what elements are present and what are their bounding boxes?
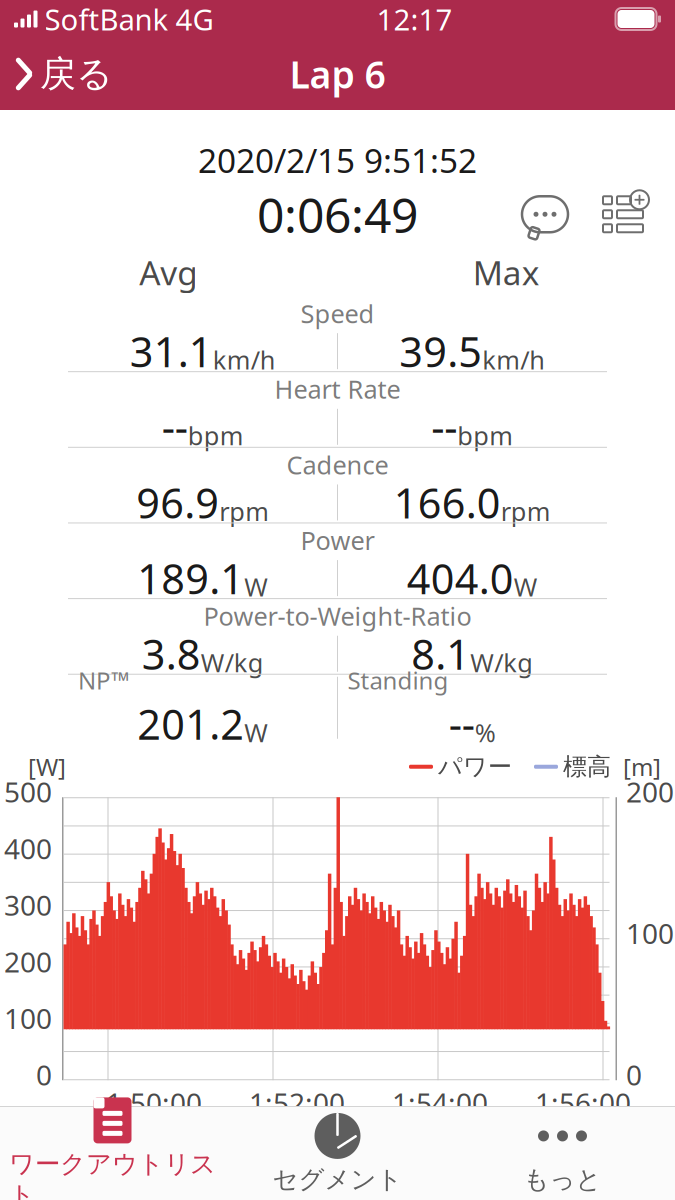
staticText: km/h (213, 343, 276, 377)
staticText: 100 (626, 915, 674, 952)
staticText: 189.1 (137, 551, 244, 606)
button[interactable]: Add to list (595, 190, 651, 238)
staticText: 166.0 (394, 475, 501, 530)
staticText: 8.1 (411, 626, 470, 681)
staticText: rpm (501, 494, 551, 528)
staticText: % (475, 715, 496, 749)
button[interactable]: Comments (519, 190, 571, 238)
staticText: 0 (36, 1056, 52, 1093)
staticText: 0 (626, 1056, 642, 1093)
staticText: rpm (219, 494, 269, 528)
staticText: Heart Rate (274, 372, 400, 406)
staticText: km/h (482, 343, 545, 377)
staticText: SoftBank (44, 0, 168, 38)
staticText: 96.9 (136, 475, 219, 530)
staticText: 12:17 (376, 0, 452, 38)
staticText: W/kg (201, 645, 264, 679)
staticText: bpm (188, 419, 244, 452)
staticText: 4G (175, 0, 213, 38)
staticText: Avg (139, 250, 198, 295)
staticText: Power (300, 523, 374, 557)
staticText: Speed (300, 296, 374, 330)
staticText: 100 (4, 999, 52, 1037)
button[interactable]: もっと (450, 1106, 675, 1200)
staticText: -- (162, 399, 188, 454)
button[interactable]: ワークアウトリスト (0, 1090, 225, 1200)
staticText: 39.5 (399, 324, 482, 379)
staticText: 1:54:00 (392, 1084, 488, 1121)
staticText: 31.1 (130, 324, 213, 379)
staticText: もっと (523, 1164, 601, 1195)
staticText: W/kg (470, 645, 533, 679)
staticText: [W] (28, 751, 66, 783)
staticText: -- (449, 696, 475, 751)
staticText: Lap 6 (289, 49, 385, 99)
staticText: 1:56:00 (535, 1084, 631, 1121)
staticText: 404.0 (407, 551, 514, 606)
staticText: 0:06:49 (257, 182, 418, 246)
staticText: Power-to-Weight-Ratio (203, 599, 471, 633)
staticText: 300 (4, 886, 52, 923)
button[interactable]: セグメント (225, 1106, 450, 1200)
staticText: [m] (623, 751, 661, 783)
staticText: ワークアウトリスト (9, 1148, 216, 1200)
button[interactable]: 戻る (0, 44, 113, 104)
staticText: 1:50:00 (106, 1084, 202, 1121)
staticText: 200 (4, 943, 52, 980)
staticText: W (514, 570, 538, 603)
staticText: NP™ (78, 664, 130, 696)
staticText: 3.8 (142, 626, 201, 681)
staticText: 標高 (563, 752, 611, 781)
staticText: セグメント (272, 1164, 402, 1195)
staticText: W (244, 715, 268, 749)
staticText: 1:52:00 (249, 1084, 345, 1121)
staticText: 200 (626, 773, 674, 810)
staticText: -- (431, 399, 457, 454)
staticText: 戻る (40, 52, 113, 96)
staticText: 500 (4, 773, 52, 810)
staticText: Cadence (286, 448, 388, 481)
staticText: W (244, 570, 268, 603)
staticText: Max (473, 250, 540, 295)
staticText: 201.2 (137, 696, 244, 751)
staticText: 2020/2/15 9:51:52 (198, 138, 477, 182)
staticText: パワー (438, 752, 512, 781)
staticText: bpm (457, 419, 513, 452)
staticText: Standing (347, 664, 448, 696)
staticText: 400 (4, 830, 52, 867)
